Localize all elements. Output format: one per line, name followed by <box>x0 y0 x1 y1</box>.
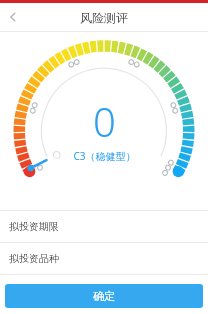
staticText: 拟投资品种 <box>9 252 59 265</box>
staticText: 0 <box>93 94 116 148</box>
button[interactable]: 确定 <box>5 284 203 308</box>
staticText: C3（稳健型） <box>73 149 136 163</box>
staticText: 确定 <box>93 289 115 303</box>
button[interactable]: Back <box>0 4 26 30</box>
staticText: 拟投资期限 <box>9 220 59 233</box>
button[interactable]: 拟投资品种 <box>0 243 208 274</box>
button[interactable]: 拟投资期限 <box>0 211 208 242</box>
staticText: 风险测评 <box>80 10 128 25</box>
